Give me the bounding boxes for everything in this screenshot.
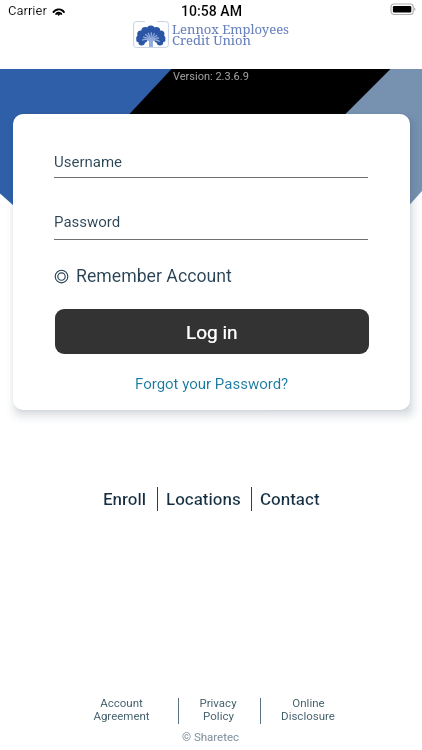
staticText: Contact (260, 489, 320, 509)
button[interactable]: Locations (166, 489, 241, 509)
staticText: Remember Account (76, 266, 232, 287)
button[interactable]: Enroll (103, 489, 147, 509)
staticText: Forgot your Password? (135, 375, 289, 393)
button[interactable]: Online (263, 696, 353, 722)
staticText: Online (292, 696, 325, 709)
staticText: Log in (186, 321, 238, 343)
staticText: Privacy (199, 696, 237, 709)
staticText: Password (54, 213, 121, 231)
staticText: Enroll (103, 489, 147, 509)
other: Battery full (391, 4, 418, 16)
staticText: © Sharetec (182, 730, 240, 743)
button[interactable]: Forgot your Password? (135, 375, 289, 393)
staticText: Lennox Employees Credit Union (172, 20, 289, 49)
staticText: Version: 2.3.6.9 (173, 70, 249, 83)
staticText: Account (100, 696, 143, 709)
staticText: 10:58 AM (181, 3, 242, 19)
staticText: Username (54, 153, 123, 171)
staticText: Agreement (93, 709, 150, 722)
staticText: Carrier (8, 3, 47, 18)
button[interactable]: Log in (55, 309, 369, 354)
button[interactable]: Remember Account (54, 263, 232, 289)
staticText: Disclosure (281, 709, 335, 722)
button[interactable]: Contact (260, 489, 320, 509)
staticText: Locations (166, 489, 241, 509)
other: Wi-Fi signal (51, 4, 67, 16)
button[interactable]: Account (76, 696, 166, 722)
button[interactable]: Privacy (173, 696, 263, 722)
staticText: Policy (203, 709, 234, 722)
